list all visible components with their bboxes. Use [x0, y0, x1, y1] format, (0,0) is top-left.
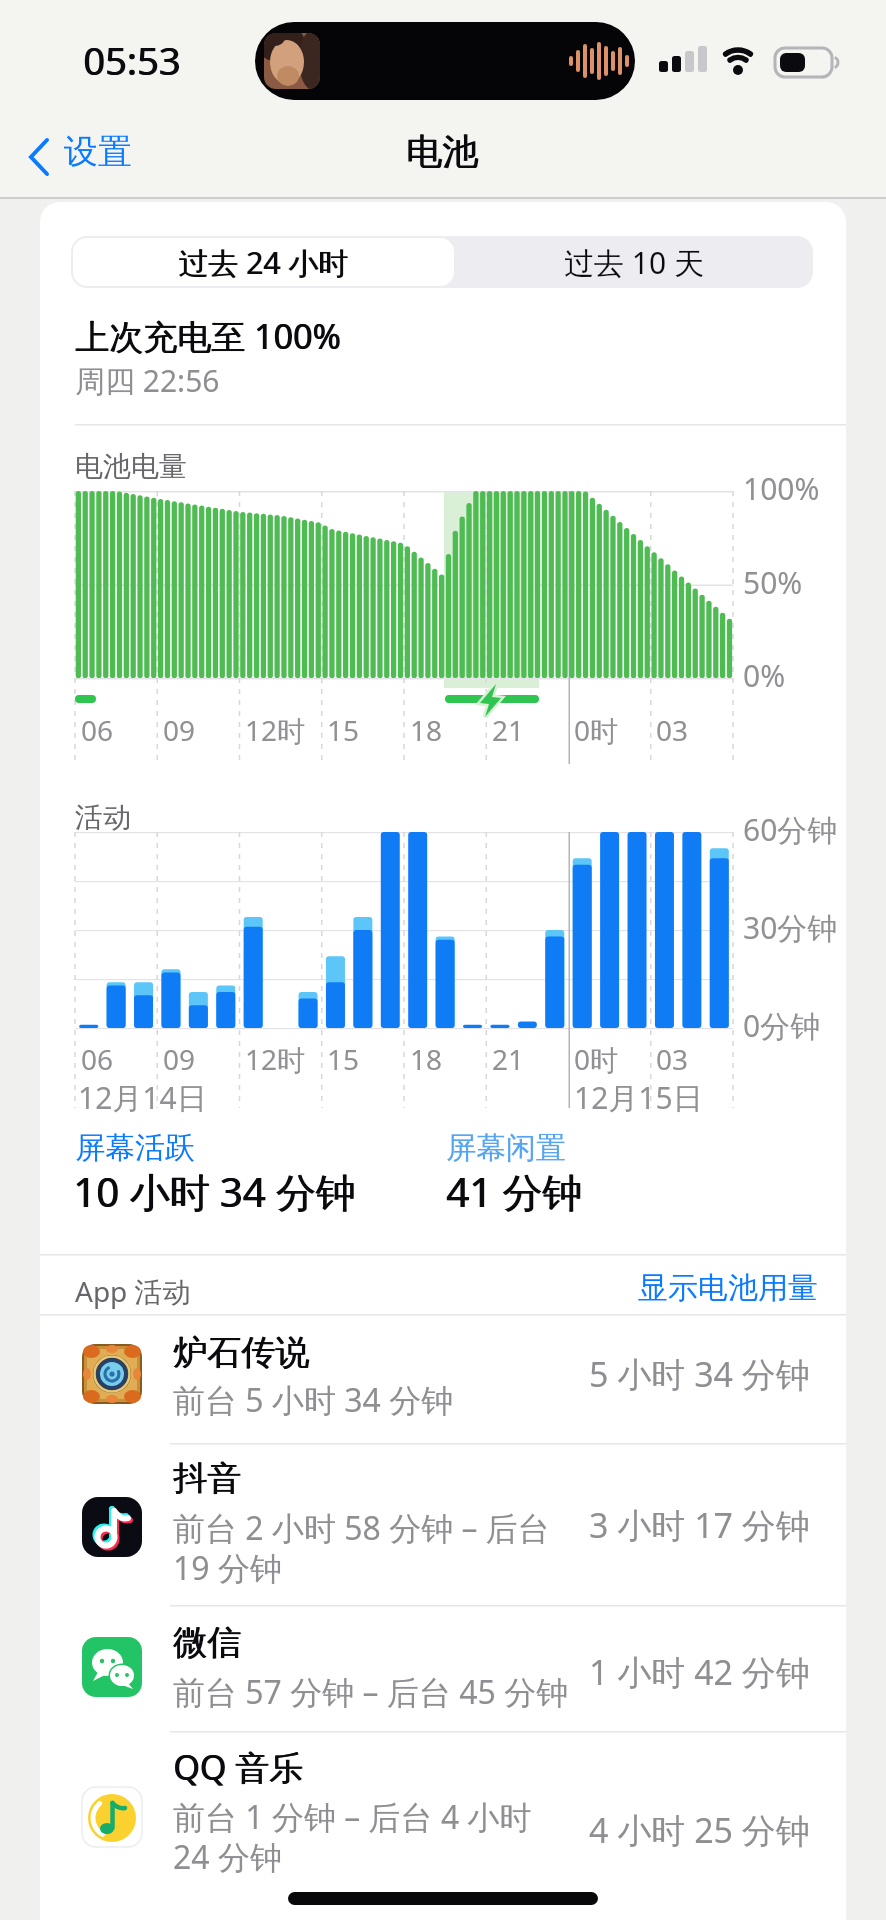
staticText: 电池 — [406, 129, 478, 174]
staticText: 抖音 — [173, 1457, 241, 1500]
staticText: 0时 — [574, 711, 619, 749]
button[interactable]: 过去 10 天 — [454, 236, 813, 288]
staticText: QQ 音乐 — [173, 1744, 303, 1790]
staticText: 3 小时 17 分钟 — [589, 1502, 810, 1548]
staticText: 活动 — [75, 800, 131, 835]
staticText: 炉石传说 — [173, 1331, 309, 1374]
button[interactable] — [40, 1732, 846, 1920]
staticText: 41 分钟 — [447, 1164, 584, 1219]
staticText: 微信 — [174, 1621, 242, 1664]
staticText: 抖音 — [174, 1457, 242, 1500]
staticText: 41 分钟 — [446, 1164, 583, 1219]
staticText: 微信 — [173, 1621, 241, 1664]
staticText: 24 分钟 — [173, 1835, 282, 1879]
staticText: 电池 — [406, 129, 478, 174]
staticText: 21 — [492, 1040, 525, 1078]
staticText: 05:53 — [84, 34, 182, 86]
staticText: 抖音 — [173, 1457, 241, 1500]
staticText: 10 小时 34 分钟 — [73, 1164, 356, 1219]
staticText: 微信 — [173, 1621, 241, 1664]
staticText: 15 — [327, 711, 360, 749]
staticText: 30分钟 — [743, 907, 838, 948]
staticText: 上次充电至 100% — [76, 313, 342, 359]
staticText: 过去 10 天 — [564, 242, 704, 283]
button[interactable] — [40, 1444, 846, 1605]
staticText: 50% — [743, 562, 803, 603]
staticText: 60分钟 — [743, 809, 838, 850]
staticText: 0% — [743, 655, 786, 696]
staticText: 5 小时 34 分钟 — [589, 1351, 810, 1397]
staticText: 05:53 — [83, 34, 181, 86]
staticText: 0分钟 — [743, 1005, 821, 1046]
staticText: 0时 — [574, 1040, 619, 1078]
staticText: 电池 — [407, 129, 479, 174]
staticText: 前台 57 分钟 – 后台 45 分钟 — [173, 1670, 569, 1714]
button[interactable] — [600, 1264, 846, 1310]
button[interactable] — [18, 130, 158, 186]
staticText: App 活动 — [75, 1272, 191, 1310]
staticText: 过去 24 小时 — [178, 242, 348, 283]
staticText: 06 — [81, 1040, 114, 1078]
staticText: 41 分钟 — [446, 1164, 583, 1219]
staticText: QQ 音乐 — [174, 1744, 304, 1790]
staticText: 前台 1 分钟 – 后台 4 小时 — [173, 1795, 532, 1839]
staticText: 上次充电至 100% — [75, 313, 341, 359]
staticText: 前台 5 小时 34 分钟 — [173, 1378, 454, 1422]
staticText: 前台 2 小时 58 分钟 – 后台 — [173, 1506, 550, 1550]
staticText: 显示电池用量 — [638, 1269, 818, 1307]
staticText: 10 小时 34 分钟 — [74, 1164, 357, 1219]
staticText: 屏幕活跃 — [75, 1129, 195, 1167]
button[interactable] — [40, 1606, 846, 1731]
staticText: 03 — [656, 1040, 689, 1078]
staticText: 15 — [327, 1040, 360, 1078]
staticText: 03 — [656, 711, 689, 749]
staticText: 12月15日 — [574, 1077, 703, 1118]
staticText: 上次充电至 100% — [75, 313, 341, 359]
staticText: 18 — [410, 711, 443, 749]
staticText: 炉石传说 — [174, 1331, 310, 1374]
staticText: 06 — [81, 711, 114, 749]
staticText: 12时 — [245, 711, 306, 749]
staticText: 05:53 — [83, 34, 181, 86]
staticText: 炉石传说 — [173, 1331, 309, 1374]
staticText: 09 — [163, 711, 196, 749]
button[interactable]: 过去 24 小时 — [71, 236, 454, 288]
button[interactable] — [40, 1315, 846, 1443]
staticText: 10 小时 34 分钟 — [73, 1164, 356, 1219]
staticText: 1 小时 42 分钟 — [589, 1649, 810, 1695]
staticText: 设置 — [64, 130, 132, 173]
staticText: 过去 24 小时 — [179, 242, 349, 283]
staticText: 12月14日 — [78, 1077, 207, 1118]
staticText: 屏幕闲置 — [446, 1129, 566, 1167]
staticText: 12时 — [245, 1040, 306, 1078]
staticText: QQ 音乐 — [173, 1744, 303, 1790]
staticText: 电池电量 — [75, 449, 187, 484]
staticText: 09 — [163, 1040, 196, 1078]
staticText: 19 分钟 — [173, 1546, 282, 1590]
staticText: 周四 22:56 — [75, 360, 220, 401]
staticText: 18 — [410, 1040, 443, 1078]
staticText: 100% — [743, 468, 820, 509]
staticText: 21 — [492, 711, 525, 749]
staticText: 4 小时 25 分钟 — [589, 1807, 810, 1853]
